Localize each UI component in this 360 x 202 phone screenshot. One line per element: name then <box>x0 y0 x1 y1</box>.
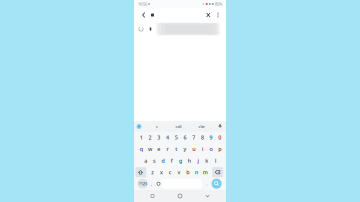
staticText: i <box>202 145 203 153</box>
button[interactable]: 7 <box>189 132 198 142</box>
staticText: o <box>210 145 213 153</box>
staticText: y <box>183 145 186 153</box>
button[interactable]: 6 <box>181 132 189 142</box>
button[interactable]: 1 <box>137 132 146 142</box>
button[interactable]: l <box>211 155 220 166</box>
staticText: c <box>169 169 172 176</box>
staticText: k <box>205 157 208 164</box>
staticText: c <box>156 124 158 129</box>
staticText: 4 <box>166 134 169 141</box>
button[interactable]: Back <box>139 8 148 22</box>
button[interactable]: Keyboard settings <box>135 121 142 132</box>
button[interactable]: More options <box>213 8 222 22</box>
button[interactable]: s <box>150 155 159 166</box>
button[interactable]: m <box>201 167 209 177</box>
button[interactable]: c <box>151 121 162 132</box>
staticText: f <box>171 157 173 164</box>
button[interactable]: e <box>154 144 163 154</box>
button[interactable]: v <box>175 167 183 177</box>
staticText: x <box>160 169 163 176</box>
staticText: che <box>198 124 204 129</box>
button[interactable]: 0 <box>215 132 224 142</box>
button[interactable]: i <box>198 144 207 154</box>
button[interactable]: ?123 <box>137 179 148 188</box>
button[interactable]: App <box>148 8 157 22</box>
staticText: g <box>179 157 182 164</box>
button[interactable]: Backspace <box>212 167 223 177</box>
button[interactable]: t <box>172 144 181 154</box>
staticText: u <box>192 145 195 153</box>
staticText: 3 <box>157 134 160 141</box>
staticText: . <box>206 181 207 186</box>
button[interactable]: 3 <box>154 132 163 142</box>
staticText: 0 <box>218 134 221 141</box>
staticText: ?123 <box>139 181 147 186</box>
staticText: a <box>144 157 147 164</box>
staticText: 1 <box>140 134 143 141</box>
staticText: 6 <box>183 134 186 141</box>
staticText: q <box>140 145 143 153</box>
button[interactable]: f <box>167 155 176 166</box>
button[interactable]: b <box>183 167 192 177</box>
button[interactable]: g <box>176 155 185 166</box>
button[interactable]: p <box>215 144 224 154</box>
staticText: 5 <box>175 134 178 141</box>
staticText: b <box>186 169 189 176</box>
staticText: z <box>151 169 154 176</box>
staticText: , <box>151 181 152 186</box>
button[interactable]: che <box>194 121 208 132</box>
button[interactable]: u <box>189 144 198 154</box>
button[interactable]: w <box>146 144 154 154</box>
button[interactable]: d <box>159 155 167 166</box>
button[interactable]: Reload <box>136 22 146 36</box>
button[interactable]: a <box>141 155 150 166</box>
button[interactable]: c <box>166 167 175 177</box>
button[interactable]: Voice input <box>217 121 223 132</box>
staticText: t <box>175 145 177 153</box>
staticText: 9 <box>210 134 213 141</box>
button[interactable]: x <box>157 167 166 177</box>
button[interactable]: k <box>202 155 211 166</box>
button[interactable]: . <box>202 179 212 188</box>
button[interactable]: y <box>181 144 189 154</box>
staticText: h <box>188 157 191 164</box>
button[interactable]: r <box>163 144 172 154</box>
button[interactable]: Shift <box>135 167 146 177</box>
button[interactable]: j <box>194 155 202 166</box>
staticText: l <box>215 157 216 164</box>
button[interactable]: Close <box>203 8 213 22</box>
staticText: e <box>157 145 160 153</box>
button[interactable]: Search <box>212 179 222 189</box>
button[interactable]: Recent apps <box>143 190 161 202</box>
staticText: d <box>162 157 165 164</box>
button[interactable]: Back <box>198 190 216 202</box>
staticText: v <box>177 169 180 176</box>
button[interactable]: 5 <box>172 132 181 142</box>
button[interactable]: Emoji <box>155 179 162 188</box>
button[interactable]: z <box>148 167 157 177</box>
button[interactable]: , <box>148 179 155 188</box>
button[interactable]: o <box>207 144 215 154</box>
button[interactable]: n <box>192 167 201 177</box>
button[interactable]: call <box>171 121 185 132</box>
staticText: w <box>148 145 152 153</box>
staticText: m <box>203 169 208 176</box>
button[interactable]: h <box>185 155 194 166</box>
staticText: p <box>218 145 221 153</box>
staticText: n <box>195 169 198 176</box>
button[interactable]: 4 <box>163 132 172 142</box>
staticText: 2 <box>149 134 152 141</box>
button[interactable]: Secure <box>146 22 155 36</box>
button[interactable]: 9 <box>207 132 215 142</box>
staticText: s <box>153 157 156 164</box>
staticText: r <box>166 145 168 153</box>
staticText: 10:56 <box>138 1 147 7</box>
staticText: 8 <box>201 134 204 141</box>
staticText: 7 <box>192 134 195 141</box>
button[interactable]: 2 <box>146 132 154 142</box>
button[interactable]: 8 <box>198 132 207 142</box>
button[interactable]: Home <box>171 190 189 202</box>
button[interactable]: q <box>137 144 146 154</box>
staticText: call <box>175 124 181 129</box>
